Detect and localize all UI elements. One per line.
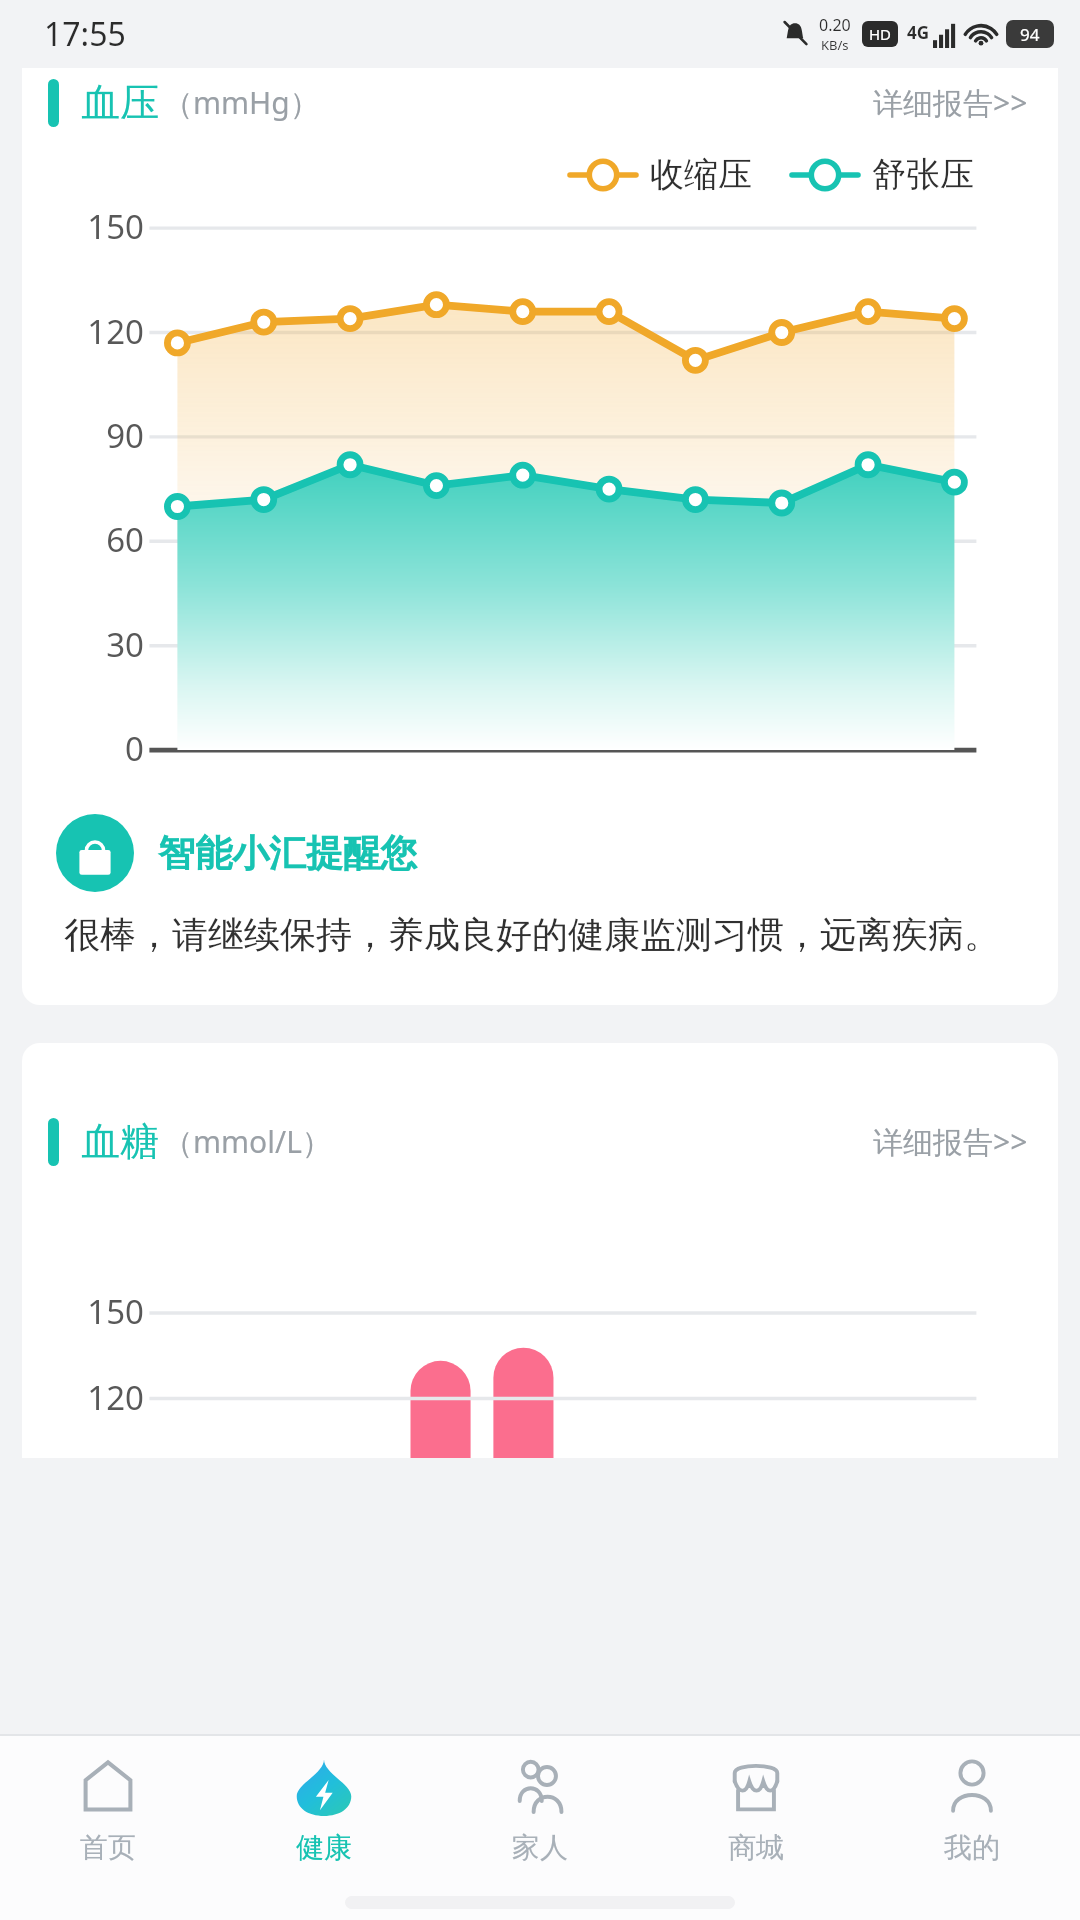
- staticText: 94: [1020, 23, 1040, 46]
- staticText: 首页: [80, 1830, 136, 1865]
- staticText: 120: [34, 309, 144, 354]
- staticText: 我的: [944, 1830, 1000, 1865]
- staticText: 120: [34, 1375, 144, 1420]
- staticText: 收缩压: [650, 153, 752, 196]
- staticText: （mmol/L）: [163, 1121, 332, 1162]
- staticText: 150: [34, 1289, 144, 1334]
- button[interactable]: 商城: [648, 1736, 864, 1884]
- button[interactable]: 详细报告>>: [869, 1115, 1032, 1168]
- staticText: 17:55: [44, 12, 126, 56]
- button[interactable]: 健康: [216, 1736, 432, 1884]
- button[interactable]: 收缩压: [570, 153, 752, 196]
- button[interactable]: 我的: [864, 1736, 1080, 1884]
- staticText: 30: [34, 622, 144, 667]
- staticText: 很棒，请继续保持，养成良好的健康监测习惯，远离疾病。: [64, 912, 1000, 957]
- staticText: 4G: [907, 21, 930, 44]
- staticText: 150: [34, 204, 144, 249]
- staticText: 血糖: [81, 1117, 159, 1166]
- staticText: 60: [34, 517, 144, 562]
- staticText: 90: [34, 413, 144, 458]
- staticText: HD: [869, 24, 892, 44]
- staticText: （mmHg）: [163, 82, 320, 123]
- staticText: 商城: [728, 1830, 784, 1865]
- staticText: 智能小汇提醒您: [158, 830, 417, 877]
- staticText: 舒张压: [872, 153, 974, 196]
- button[interactable]: 家人: [432, 1736, 648, 1884]
- button[interactable]: 详细报告>>: [869, 76, 1032, 129]
- staticText: 详细报告>>: [873, 82, 1028, 123]
- staticText: 血压: [81, 78, 159, 127]
- button[interactable]: 首页: [0, 1736, 216, 1884]
- staticText: 0: [34, 726, 144, 771]
- staticText: 健康: [296, 1830, 352, 1865]
- button[interactable]: 舒张压: [792, 153, 974, 196]
- staticText: KB/s: [821, 36, 849, 54]
- staticText: 0.20: [819, 14, 851, 36]
- staticText: 详细报告>>: [873, 1121, 1028, 1162]
- staticText: 家人: [512, 1830, 568, 1865]
